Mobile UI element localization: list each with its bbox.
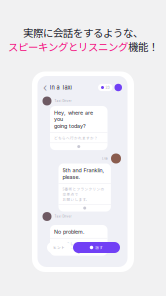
staticText: Taxi Driver [54, 99, 71, 103]
button[interactable]: Expand [50, 249, 107, 256]
staticText: 5番街とフランクリンの交差点で お願いします。 [62, 186, 104, 202]
staticText: わかりました。 [54, 241, 82, 246]
staticText: In a Taxi [49, 84, 71, 91]
staticText: Lisa [102, 157, 108, 160]
staticText: 話す [95, 245, 103, 250]
staticText: Hey, where are you [54, 109, 93, 122]
staticText: ヒント [53, 245, 65, 250]
button[interactable]: Back [43, 81, 47, 94]
staticText: No problem. [54, 228, 85, 235]
staticText: please. [62, 174, 80, 180]
button[interactable]: 話す [73, 242, 120, 253]
staticText: Taxi Driver [54, 215, 71, 218]
button[interactable]: Expand [58, 204, 111, 211]
staticText: スピーキングとリスニング [8, 39, 128, 54]
staticText: 機能！ [128, 39, 158, 54]
staticText: どちらへ行かれますか？ [54, 135, 98, 141]
staticText: 実際に会話をするような、 [23, 25, 143, 40]
staticText: ‹ [43, 81, 47, 94]
staticText: 23 [105, 85, 109, 90]
button[interactable]: ヒント [47, 242, 71, 253]
staticText: going today? [54, 123, 86, 129]
staticText: 5th and Franklin, [62, 167, 104, 173]
button[interactable]: Expand [50, 143, 107, 150]
